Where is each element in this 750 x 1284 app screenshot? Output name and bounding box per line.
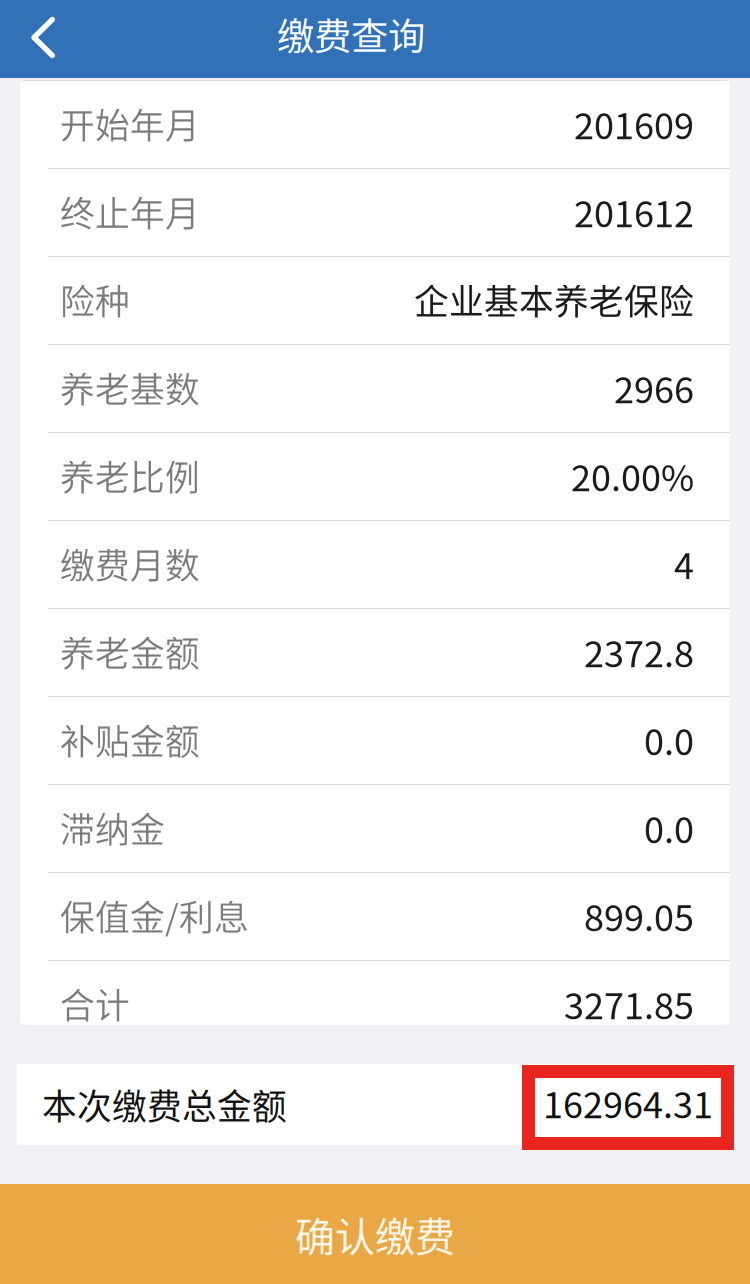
staticText: 2966: [614, 361, 694, 413]
staticText: 险种: [60, 274, 130, 325]
staticText: 滞纳金: [60, 802, 165, 853]
staticText: 企业基本养老保险: [414, 274, 694, 325]
staticText: 终止年月: [60, 186, 200, 237]
staticText: 0.0: [644, 801, 694, 853]
staticText: 899.05: [584, 889, 694, 941]
staticText: 0.0: [644, 713, 694, 765]
staticText: 合计: [60, 978, 130, 1029]
staticText: 201609: [574, 97, 694, 149]
staticText: 开始年月: [60, 98, 200, 149]
staticText: 2372.8: [584, 625, 694, 677]
staticText: 补贴金额: [60, 714, 200, 765]
staticText: 201612: [574, 185, 694, 237]
staticText: 20.00%: [571, 449, 694, 501]
staticText: 4: [674, 537, 694, 589]
staticText: 养老金额: [60, 626, 200, 677]
staticText: 确认缴费: [295, 1205, 455, 1263]
staticText: 养老基数: [60, 362, 200, 413]
staticText: 保值金/利息: [60, 890, 249, 941]
staticText: 162964.31: [543, 1076, 713, 1128]
staticText: 养老比例: [60, 450, 200, 501]
staticText: 缴费查询: [277, 7, 425, 61]
button[interactable]: 确认缴费: [0, 1184, 750, 1284]
staticText: 本次缴费总金额: [42, 1079, 287, 1130]
button[interactable]: 返回: [0, 0, 88, 78]
staticText: 缴费月数: [60, 538, 200, 589]
staticText: 3271.85: [564, 977, 694, 1029]
